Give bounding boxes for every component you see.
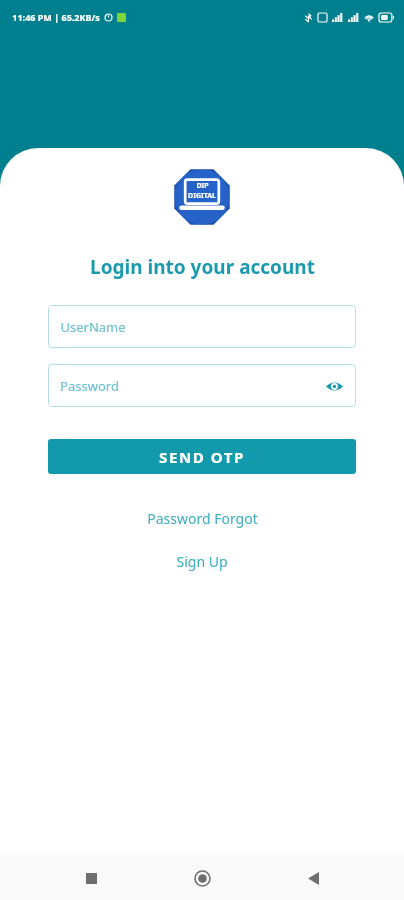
staticText: UserName bbox=[60, 318, 126, 336]
button[interactable]: Sign Up bbox=[164, 549, 240, 574]
staticText: 11:46 PM | 65.2KB/s bbox=[12, 11, 100, 23]
button[interactable]: Recent apps bbox=[71, 858, 111, 898]
staticText: Password bbox=[60, 377, 119, 395]
staticText: Password Forgot bbox=[147, 509, 258, 528]
staticText: Login into your account bbox=[90, 254, 315, 280]
button[interactable]: UserName bbox=[48, 305, 356, 348]
button[interactable]: Password Forgot bbox=[135, 506, 270, 531]
button[interactable]: Home bbox=[182, 858, 222, 898]
button[interactable]: Back bbox=[293, 858, 333, 898]
staticText: DIP bbox=[196, 181, 209, 191]
staticText: DIGITAL bbox=[188, 191, 216, 201]
staticText: SEND OTP bbox=[159, 447, 245, 467]
staticText: Sign Up bbox=[176, 552, 228, 571]
button[interactable]: SEND OTP bbox=[48, 439, 356, 474]
button[interactable]: Show password bbox=[324, 376, 344, 396]
button[interactable]: Password bbox=[48, 364, 356, 407]
